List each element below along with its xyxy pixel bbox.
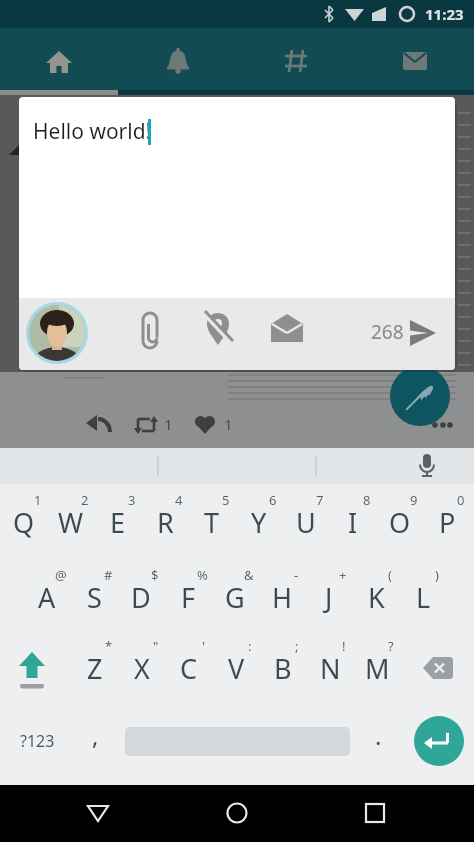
button[interactable]	[26, 302, 88, 364]
staticText: Z	[87, 650, 103, 687]
button[interactable]: F	[165, 563, 211, 631]
staticText: 11:23	[425, 4, 464, 24]
staticText: )	[435, 566, 439, 584]
staticText: 2	[81, 491, 89, 509]
button[interactable]: O	[377, 488, 423, 556]
staticText: 1	[164, 414, 173, 434]
button[interactable]	[10, 715, 66, 767]
button[interactable]	[68, 793, 128, 833]
button[interactable]: G	[212, 563, 258, 631]
button[interactable]	[267, 311, 307, 353]
staticText: S	[87, 579, 102, 616]
staticText: ?123	[20, 730, 55, 752]
button[interactable]: U	[283, 488, 329, 556]
staticText: 8	[363, 491, 371, 509]
staticText: X	[134, 650, 150, 687]
staticText: 268	[371, 319, 404, 345]
button[interactable]	[237, 28, 356, 90]
staticText: #	[104, 566, 113, 584]
button[interactable]: Y	[236, 488, 282, 556]
staticText: P	[439, 504, 456, 541]
button[interactable]	[6, 640, 58, 696]
staticText: .	[375, 719, 382, 752]
staticText: Hello world!	[33, 117, 152, 146]
staticText: I	[348, 504, 358, 541]
staticText: 6	[269, 491, 277, 509]
staticText: W	[58, 504, 84, 541]
staticText: H	[272, 579, 293, 616]
staticText: K	[368, 579, 385, 616]
button[interactable]: N	[307, 634, 353, 702]
staticText: R	[157, 504, 174, 541]
staticText: V	[228, 650, 245, 687]
staticText: *	[105, 637, 113, 655]
button[interactable]	[118, 28, 237, 90]
button[interactable]: J	[306, 563, 352, 631]
staticText: &	[244, 566, 254, 584]
staticText: B	[274, 650, 292, 687]
button[interactable]: X	[119, 634, 165, 702]
button[interactable]	[207, 793, 267, 833]
staticText: !	[342, 637, 346, 655]
staticText: 1	[34, 491, 42, 509]
button[interactable]: H	[259, 563, 305, 631]
button[interactable]: A	[24, 563, 70, 631]
staticText: C	[180, 650, 198, 687]
button[interactable]	[390, 366, 450, 426]
staticText: J	[325, 579, 333, 616]
button[interactable]	[408, 318, 438, 348]
staticText: L	[416, 579, 431, 616]
button[interactable]: C	[166, 634, 212, 702]
staticText: D	[131, 579, 151, 616]
staticText: $	[151, 566, 159, 584]
button[interactable]: K	[353, 563, 399, 631]
button[interactable]	[0, 28, 118, 90]
staticText: 7	[316, 491, 324, 509]
button[interactable]: L	[400, 563, 446, 631]
staticText: M	[365, 650, 390, 687]
staticText: +	[339, 566, 347, 584]
button[interactable]: W	[48, 488, 94, 556]
button[interactable]: B	[260, 634, 306, 702]
staticText: O	[389, 504, 411, 541]
button[interactable]: I	[330, 488, 376, 556]
button[interactable]	[198, 311, 238, 353]
staticText: F	[181, 579, 196, 616]
staticText: (	[388, 566, 392, 584]
button[interactable]: D	[118, 563, 164, 631]
staticText: 0	[457, 491, 465, 509]
button[interactable]: T	[189, 488, 235, 556]
button[interactable]	[345, 793, 405, 833]
button[interactable]: V	[213, 634, 259, 702]
staticText: A	[38, 579, 56, 616]
button[interactable]	[356, 28, 474, 90]
staticText: 4	[175, 491, 183, 509]
button[interactable]: Z	[72, 634, 118, 702]
staticText: U	[296, 504, 316, 541]
staticText: %	[197, 566, 208, 584]
button[interactable]: E	[95, 488, 141, 556]
staticText: :	[248, 637, 252, 655]
staticText: Y	[251, 504, 267, 541]
staticText: 3	[128, 491, 136, 509]
staticText: 5	[222, 491, 230, 509]
staticText: G	[225, 579, 245, 616]
button[interactable]: R	[142, 488, 188, 556]
staticText: "	[153, 637, 159, 655]
button[interactable]: P	[424, 488, 470, 556]
staticText: 1	[224, 414, 233, 434]
button[interactable]: M	[354, 634, 400, 702]
button[interactable]	[412, 451, 442, 481]
staticText: @	[55, 566, 67, 584]
staticText: N	[320, 650, 341, 687]
button[interactable]: S	[71, 563, 117, 631]
button[interactable]	[130, 311, 170, 353]
staticText: T	[204, 504, 220, 541]
button[interactable]	[413, 644, 465, 692]
button[interactable]	[414, 716, 464, 766]
button[interactable]: Q	[1, 488, 47, 556]
staticText: Q	[13, 504, 35, 541]
staticText: -	[294, 566, 299, 584]
staticText: '	[202, 637, 205, 655]
